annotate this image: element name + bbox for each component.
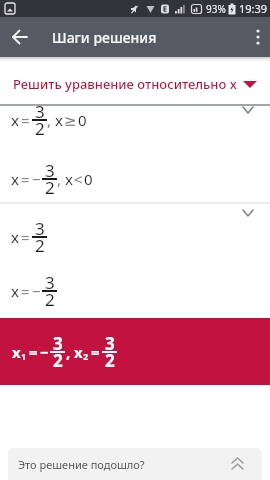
staticText: 2 [105, 349, 115, 372]
staticText: 2 [53, 349, 63, 372]
staticText: Шаги решения [52, 28, 157, 47]
staticText: 3 [45, 271, 55, 294]
staticText: 2 [35, 117, 45, 140]
staticText: Решить уравнение относительно x [13, 75, 237, 93]
staticText: 3 [35, 100, 45, 123]
staticText: x [65, 169, 73, 189]
staticText: ≥ [64, 112, 77, 129]
staticText: 3 [105, 332, 115, 355]
staticText: x [11, 169, 19, 189]
staticText: − [32, 169, 41, 189]
staticText: , [66, 342, 71, 362]
staticText: = [29, 342, 38, 362]
staticText: 3 [53, 332, 63, 355]
staticText: x [74, 342, 83, 362]
staticText: Это решение подошло? [18, 457, 145, 472]
button[interactable] [246, 25, 270, 49]
staticText: 0 [84, 169, 93, 189]
staticText: 2 [45, 288, 55, 311]
staticText: 3 [45, 159, 55, 182]
staticText: 3 [35, 217, 45, 240]
staticText: < [74, 169, 83, 189]
staticText: − [32, 281, 41, 301]
staticText: x [12, 342, 21, 362]
button[interactable]: Решить уравнение относительно x [0, 57, 270, 104]
staticText: = [21, 227, 30, 247]
button[interactable]: Это решение подошло? [8, 448, 262, 480]
button[interactable] [6, 23, 34, 51]
staticText: = [21, 169, 30, 189]
staticText: 93% [206, 2, 226, 16]
staticText: = [91, 342, 100, 362]
staticText: 0 [78, 110, 87, 130]
staticText: 2 [83, 350, 89, 362]
staticText: , [47, 110, 52, 130]
staticText: = [21, 281, 30, 301]
staticText: x [11, 281, 19, 301]
staticText: 2 [35, 234, 45, 257]
button[interactable] [237, 206, 259, 220]
staticText: , [57, 169, 62, 189]
staticText: x [55, 110, 63, 130]
staticText: 2 [45, 176, 55, 199]
staticText: 1 [21, 350, 27, 362]
staticText: − [40, 342, 49, 362]
staticText: = [21, 110, 30, 130]
staticText: 19:39 [239, 1, 268, 16]
staticText: x [11, 110, 19, 130]
staticText: x [11, 227, 19, 247]
button[interactable] [237, 103, 259, 117]
